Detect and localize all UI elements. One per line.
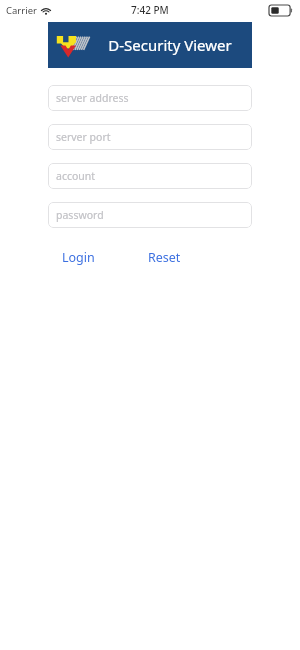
staticText: account [56,169,96,183]
staticText: password [56,208,104,222]
button[interactable]: server port [48,124,252,150]
staticText: 7:42 PM [131,3,169,17]
staticText: server address [56,91,129,105]
button[interactable]: D-Security Viewer [48,22,252,68]
button[interactable]: password [48,202,252,228]
staticText: server port [56,130,111,144]
button[interactable]: account [48,163,252,189]
button[interactable]: Login [48,246,108,268]
staticText: Reset [148,249,181,266]
staticText: Carrier [6,4,37,17]
staticText: D-Security Viewer [68,35,272,55]
button[interactable]: Reset [134,246,194,268]
button[interactable]: server address [48,85,252,111]
staticText: Login [62,249,95,266]
